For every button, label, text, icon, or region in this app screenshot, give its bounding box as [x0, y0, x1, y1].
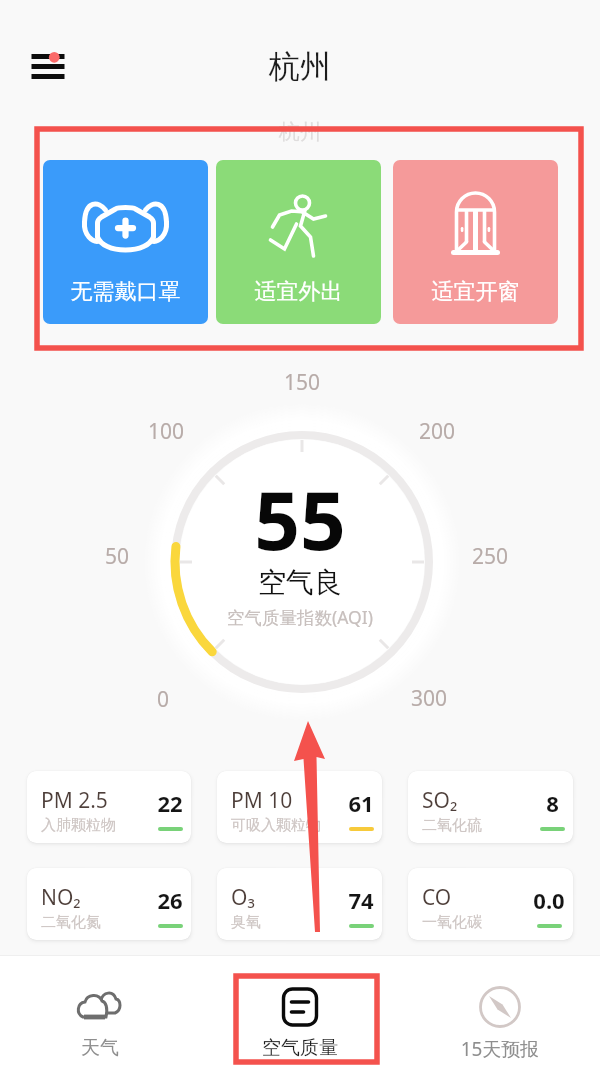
- staticText: 可吸入颗粒物: [231, 816, 321, 835]
- staticText: 15天预报: [400, 1036, 600, 1062]
- staticText: SO₂: [422, 786, 458, 815]
- staticText: 0.0: [533, 885, 565, 915]
- button[interactable]: O₃: [217, 868, 382, 940]
- staticText: 空气质量: [200, 1036, 400, 1060]
- button[interactable]: SO₂: [408, 771, 573, 843]
- staticText: 300: [379, 684, 479, 713]
- staticText: 二氧化氮: [41, 913, 101, 932]
- staticText: 250: [440, 542, 540, 571]
- staticText: PM 2.5: [41, 786, 108, 815]
- staticText: 入肺颗粒物: [41, 816, 116, 835]
- staticText: O₃: [231, 883, 255, 912]
- button[interactable]: Menu: [18, 40, 78, 94]
- button[interactable]: 15天预报: [400, 956, 600, 1068]
- staticText: 61: [348, 788, 374, 818]
- button[interactable]: 适宜开窗: [393, 160, 558, 324]
- staticText: 74: [348, 885, 374, 915]
- button[interactable]: CO: [408, 868, 573, 940]
- staticText: PM 10: [231, 786, 293, 815]
- staticText: 200: [387, 417, 487, 446]
- button[interactable]: 无需戴口罩: [43, 160, 208, 324]
- staticText: 22: [157, 788, 183, 818]
- staticText: 杭州: [0, 119, 600, 145]
- staticText: 天气: [0, 1036, 200, 1060]
- staticText: 一氧化碳: [422, 913, 482, 932]
- staticText: 55: [0, 464, 600, 573]
- staticText: 空气质量指数(AQI): [0, 605, 600, 629]
- staticText: 臭氧: [231, 913, 261, 932]
- staticText: 杭州: [0, 47, 600, 86]
- button[interactable]: NO₂: [27, 868, 191, 940]
- staticText: 150: [252, 368, 352, 397]
- staticText: 二氧化硫: [422, 816, 482, 835]
- button[interactable]: 天气: [0, 956, 200, 1068]
- staticText: 0: [113, 685, 213, 714]
- staticText: 适宜开窗: [393, 278, 558, 306]
- staticText: 26: [157, 885, 183, 915]
- staticText: 100: [116, 417, 216, 446]
- staticText: 无需戴口罩: [43, 278, 208, 306]
- button[interactable]: PM 2.5: [27, 771, 191, 843]
- button[interactable]: PM 10: [217, 771, 382, 843]
- button[interactable]: 空气质量: [200, 956, 400, 1068]
- staticText: 50: [67, 542, 167, 571]
- staticText: 8: [546, 788, 559, 818]
- staticText: NO₂: [41, 883, 81, 912]
- button[interactable]: 适宜外出: [216, 160, 381, 324]
- staticText: 空气良: [0, 565, 600, 600]
- staticText: CO: [422, 883, 452, 912]
- staticText: 适宜外出: [216, 278, 381, 306]
